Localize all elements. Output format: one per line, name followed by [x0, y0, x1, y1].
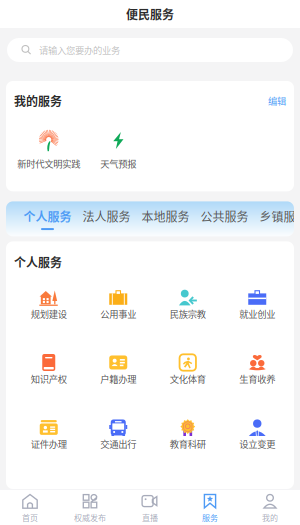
- staticText: 交通出行: [100, 437, 136, 450]
- staticText: 新时代文明实践: [17, 157, 80, 170]
- button[interactable]: 首页: [0, 490, 60, 525]
- button[interactable]: 证件办理: [14, 415, 83, 455]
- staticText: 本地服务: [141, 208, 189, 225]
- staticText: 便民服务: [126, 5, 174, 23]
- button[interactable]: 民族宗教: [153, 285, 222, 325]
- staticText: 法人服务: [82, 208, 130, 225]
- button[interactable]: 生育收养: [222, 350, 292, 390]
- staticText: 编辑: [268, 94, 286, 107]
- staticText: 首页: [22, 512, 38, 523]
- staticText: 我的: [262, 512, 278, 523]
- staticText: 直播: [142, 512, 158, 523]
- button[interactable]: 文化体育: [153, 350, 222, 390]
- button[interactable]: 本地服务: [136, 201, 195, 236]
- button[interactable]: 教育科研: [153, 415, 222, 455]
- button[interactable]: 公共服务: [195, 201, 254, 236]
- button[interactable]: 交通出行: [83, 415, 153, 455]
- staticText: 公用事业: [100, 307, 136, 320]
- button[interactable]: 我的: [240, 490, 300, 525]
- staticText: 民族宗教: [170, 307, 206, 320]
- button[interactable]: 设立变更: [222, 415, 292, 455]
- button[interactable]: 服务: [180, 490, 240, 525]
- staticText: 文化体育: [170, 372, 206, 385]
- staticText: 公共服务: [200, 208, 248, 225]
- staticText: 规划建设: [31, 307, 67, 320]
- staticText: 生育收养: [239, 372, 275, 385]
- button[interactable]: 知识产权: [14, 350, 83, 390]
- button[interactable]: 乡镇服务: [254, 201, 300, 236]
- staticText: 户籍办理: [100, 372, 136, 385]
- button[interactable]: 天气预报: [83, 126, 153, 172]
- staticText: 权威发布: [74, 512, 106, 523]
- staticText: 服务: [202, 512, 218, 523]
- button[interactable]: 编辑: [250, 94, 286, 107]
- staticText: 知识产权: [31, 372, 67, 385]
- staticText: 设立变更: [239, 437, 275, 450]
- button[interactable]: 公用事业: [83, 285, 153, 325]
- button[interactable]: 就业创业: [222, 285, 292, 325]
- staticText: 教育科研: [170, 437, 206, 450]
- staticText: 就业创业: [239, 307, 275, 320]
- button[interactable]: 法人服务: [77, 201, 136, 236]
- staticText: 证件办理: [31, 437, 67, 450]
- button[interactable]: 个人服务: [18, 201, 77, 236]
- staticText: 天气预报: [100, 157, 136, 170]
- staticText: 乡镇服务: [259, 208, 300, 225]
- staticText: 个人服务: [23, 208, 71, 225]
- button[interactable]: 直播: [120, 490, 180, 525]
- staticText: 请输入您要办的业务: [39, 43, 120, 57]
- staticText: 我的服务: [14, 92, 62, 109]
- button[interactable]: 规划建设: [14, 285, 83, 325]
- button[interactable]: 新时代文明实践: [14, 126, 83, 172]
- button[interactable]: 户籍办理: [83, 350, 153, 390]
- staticText: 个人服务: [14, 253, 62, 271]
- button[interactable]: 权威发布: [60, 490, 120, 525]
